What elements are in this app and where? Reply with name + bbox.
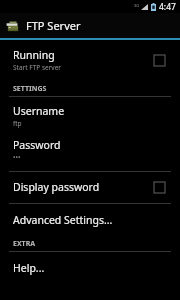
button[interactable]: Username	[0, 101, 180, 131]
button[interactable]: Help...	[0, 258, 180, 278]
staticText: Password	[13, 138, 61, 152]
staticText: •••	[13, 153, 21, 162]
button[interactable]: FTP Server icon	[0, 13, 180, 38]
staticText: Display password	[13, 180, 100, 194]
button[interactable]: Advanced Settings...	[0, 210, 180, 230]
button[interactable]: Running	[0, 45, 180, 75]
button[interactable]: Display password	[152, 180, 166, 194]
staticText: EXTRA	[13, 239, 36, 249]
staticText: Start FTP server	[13, 63, 62, 72]
staticText: Help...	[13, 261, 45, 275]
staticText: FTP Server	[26, 18, 81, 33]
button[interactable]: Password	[0, 135, 180, 165]
staticText: SETTINGS	[13, 84, 47, 94]
button[interactable]: Display password	[0, 177, 180, 197]
button[interactable]: Running	[152, 53, 166, 67]
staticText: 3G	[134, 3, 140, 8]
staticText: Advanced Settings...	[13, 213, 113, 227]
staticText: Username	[13, 104, 65, 118]
staticText: ftp	[13, 119, 22, 128]
staticText: 4:47	[159, 1, 176, 13]
other: FTP Server icon	[5, 18, 21, 34]
staticText: Running	[13, 48, 55, 62]
